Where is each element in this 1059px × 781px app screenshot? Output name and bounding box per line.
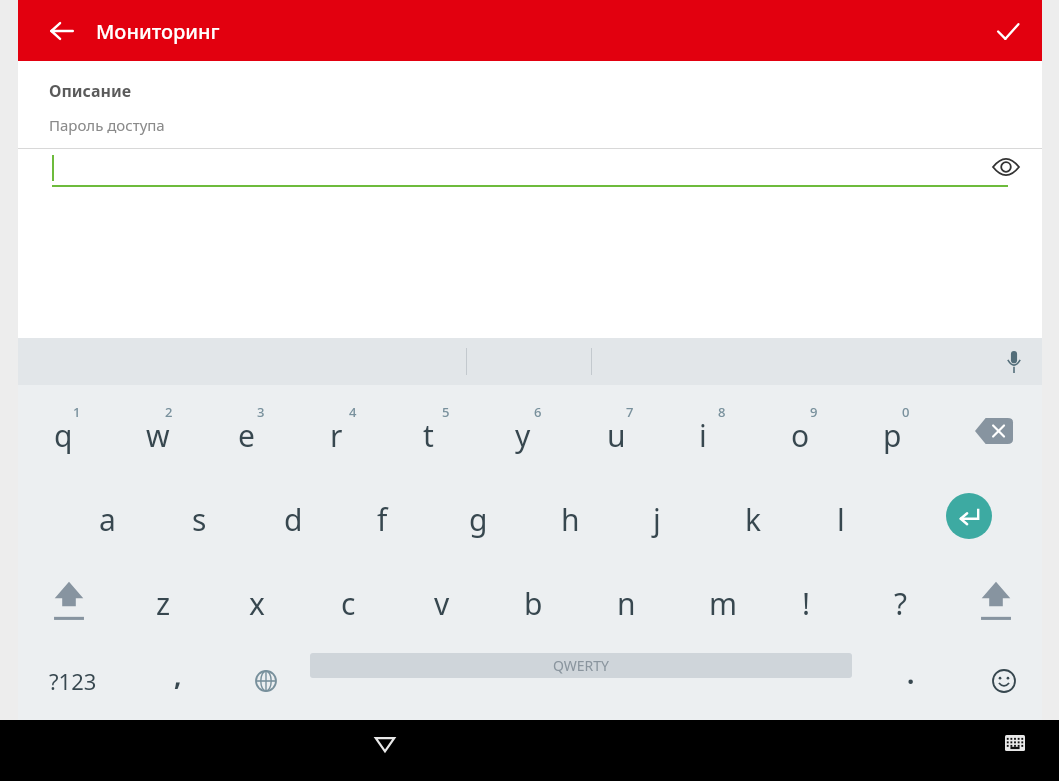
button[interactable]: Change language — [230, 650, 302, 712]
button[interactable] — [806, 480, 888, 552]
staticText: Пароль доступа — [49, 115, 165, 135]
button[interactable]: Shift — [955, 565, 1037, 637]
button[interactable]: Voice input — [986, 338, 1042, 385]
staticText: j — [653, 499, 661, 540]
button[interactable] — [403, 565, 485, 637]
button[interactable] — [678, 565, 760, 637]
staticText: p — [883, 415, 902, 456]
button[interactable] — [23, 395, 105, 467]
button[interactable]: Backspace — [953, 395, 1035, 467]
button[interactable] — [622, 480, 704, 552]
staticText: ?123 — [49, 666, 97, 696]
staticText: 6 — [534, 403, 542, 421]
staticText: . — [907, 656, 915, 691]
button[interactable]: Save — [980, 0, 1036, 61]
button[interactable] — [530, 480, 612, 552]
staticText: y — [515, 415, 531, 456]
button[interactable]: Shift — [28, 565, 110, 637]
button[interactable]: , — [138, 650, 218, 712]
button[interactable]: ?123 — [28, 650, 118, 712]
staticText: 3 — [257, 403, 265, 421]
button[interactable] — [668, 395, 750, 467]
staticText: b — [524, 583, 543, 624]
staticText: t — [423, 415, 434, 456]
button[interactable] — [392, 395, 474, 467]
staticText: ! — [802, 583, 811, 624]
button[interactable]: . — [873, 650, 949, 712]
staticText: n — [617, 583, 636, 624]
staticText: g — [469, 499, 488, 540]
staticText: w — [146, 415, 170, 456]
staticText: 2 — [165, 403, 173, 421]
button[interactable] — [253, 480, 335, 552]
staticText: 7 — [626, 403, 634, 421]
staticText: x — [249, 583, 265, 624]
button[interactable]: Emoji — [968, 650, 1040, 712]
button[interactable] — [125, 565, 207, 637]
staticText: h — [561, 499, 580, 540]
staticText: m — [709, 583, 738, 624]
button[interactable] — [207, 395, 289, 467]
button[interactable]: QWERTY — [310, 653, 852, 678]
button[interactable] — [714, 480, 796, 552]
staticText: 5 — [442, 403, 450, 421]
staticText: a — [99, 499, 116, 540]
button[interactable] — [771, 565, 853, 637]
button[interactable] — [493, 565, 575, 637]
button[interactable] — [310, 565, 392, 637]
button[interactable] — [484, 395, 566, 467]
button[interactable]: Show password — [978, 143, 1034, 191]
staticText: , — [174, 658, 182, 693]
staticText: u — [607, 415, 626, 456]
button[interactable] — [218, 565, 300, 637]
button[interactable]: Back — [355, 720, 415, 765]
button[interactable] — [863, 565, 945, 637]
staticText: Мониторинг — [96, 18, 220, 45]
staticText: Описание — [49, 80, 132, 102]
staticText: q — [54, 415, 73, 456]
button[interactable]: Hide keyboard — [985, 720, 1045, 765]
staticText: 1 — [73, 403, 81, 421]
staticText: o — [791, 415, 810, 456]
staticText: s — [192, 499, 207, 540]
staticText: v — [434, 583, 450, 624]
button[interactable] — [760, 395, 842, 467]
staticText: ? — [894, 583, 908, 624]
button[interactable] — [576, 395, 658, 467]
staticText: 0 — [902, 403, 910, 421]
button[interactable] — [346, 480, 428, 552]
button[interactable] — [68, 480, 150, 552]
button[interactable] — [161, 480, 243, 552]
button[interactable] — [438, 480, 520, 552]
staticText: e — [238, 415, 255, 456]
button[interactable] — [852, 395, 934, 467]
staticText: 4 — [349, 403, 357, 421]
staticText: z — [156, 583, 171, 624]
staticText: i — [699, 415, 707, 456]
staticText: l — [837, 499, 845, 540]
button[interactable] — [586, 565, 668, 637]
button[interactable]: Navigate up — [34, 0, 90, 61]
staticText: f — [377, 499, 388, 540]
staticText: c — [341, 583, 356, 624]
staticText: 9 — [810, 403, 818, 421]
staticText: r — [330, 415, 343, 456]
button[interactable] — [299, 395, 381, 467]
staticText: k — [745, 499, 762, 540]
button[interactable]: Enter — [928, 480, 1010, 552]
staticText: QWERTY — [553, 656, 610, 675]
staticText: d — [284, 499, 303, 540]
staticText: 8 — [718, 403, 726, 421]
button[interactable] — [115, 395, 197, 467]
